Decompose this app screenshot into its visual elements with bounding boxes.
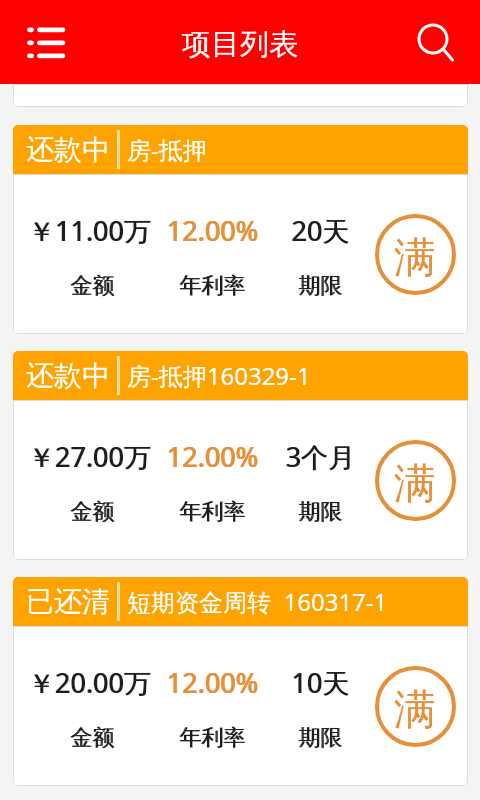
staticText: 12.00% [167,664,259,701]
staticText: 满 [394,684,436,737]
staticText: 12.00% [166,438,258,475]
staticText: 年利率 [179,498,245,526]
staticText: 20天 [291,212,349,249]
staticText: 期限 [298,498,342,526]
staticText: 3个月 [286,438,356,475]
button[interactable]: 已还清 [13,577,468,786]
button[interactable]: Menu [7,0,87,84]
staticText: 12.00% [166,664,258,701]
button[interactable]: 还款中 [13,351,468,560]
staticText: 12.00% [167,438,259,475]
button[interactable]: Search [410,0,480,84]
staticText: 年利率 [179,272,245,300]
staticText: 年利率 [179,724,245,752]
staticText: 期限 [299,498,343,526]
staticText: 期限 [299,724,343,752]
staticText: 房-抵押 [127,133,207,166]
staticText: 期限 [298,272,342,300]
staticText: 10天 [292,664,350,701]
staticText: 金额 [71,272,115,300]
staticText: ￥27.00万 [28,438,152,475]
staticText: ￥27.00万 [27,438,151,475]
staticText: 短期资金周转 160317-1 [127,585,388,618]
staticText: ￥11.00万 [28,212,152,249]
staticText: 还款中 [26,358,110,393]
staticText: 还款中 [26,132,110,167]
staticText: ￥20.00万 [28,664,152,701]
staticText: 金额 [70,724,114,752]
staticText: 期限 [299,272,343,300]
staticText: 金额 [71,724,115,752]
staticText: 已还清 [26,584,110,619]
staticText: 年利率 [180,498,246,526]
staticText: 20天 [292,212,350,249]
staticText: 房-抵押160329-1 [127,359,311,392]
staticText: 12.00% [166,212,258,249]
staticText: 金额 [71,498,115,526]
staticText: 金额 [70,272,114,300]
staticText: 项目列表 [182,26,298,63]
staticText: 满 [394,458,436,511]
button[interactable]: 还款中 [13,125,468,334]
staticText: 年利率 [180,724,246,752]
staticText: 12.00% [167,212,259,249]
staticText: 10天 [291,664,349,701]
staticText: ￥20.00万 [27,664,151,701]
staticText: ￥11.00万 [27,212,151,249]
staticText: 3个月 [285,438,355,475]
staticText: 金额 [70,498,114,526]
staticText: 满 [394,232,436,285]
staticText: 年利率 [180,272,246,300]
staticText: 期限 [298,724,342,752]
